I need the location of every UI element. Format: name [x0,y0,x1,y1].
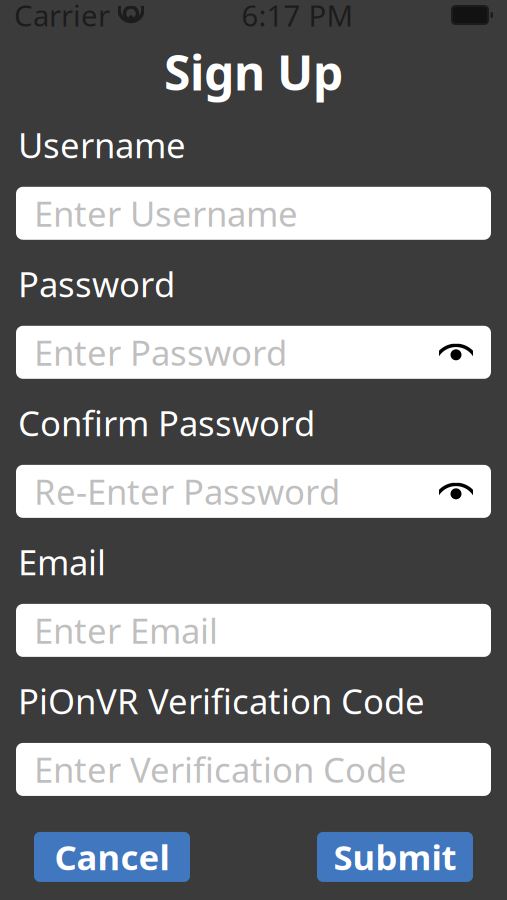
staticText: Username [18,122,186,168]
button[interactable]: Re-Enter Password [16,465,491,518]
staticText: Enter Username [34,190,298,236]
staticText: Enter Verification Code [34,746,407,792]
staticText: Enter Email [34,607,218,653]
staticText: Password [18,261,175,307]
staticText: Email [18,539,106,585]
button[interactable]: Enter Password [16,326,491,379]
staticText: PiOnVR Verification Code [18,678,425,724]
button[interactable]: Enter Verification Code [16,743,491,796]
button[interactable]: Enter Email [16,604,491,657]
button[interactable]: Cancel [34,832,190,882]
staticText: Sign Up [164,40,343,104]
staticText: Confirm Password [18,400,315,446]
staticText: Cancel [54,834,169,880]
staticText: 6:17 PM [241,0,353,34]
button[interactable]: Enter Username [16,187,491,240]
staticText: Re-Enter Password [34,468,340,514]
staticText: Submit [333,834,456,880]
button[interactable]: Submit [317,832,473,882]
staticText: Carrier [14,0,110,34]
staticText: Enter Password [34,329,287,375]
